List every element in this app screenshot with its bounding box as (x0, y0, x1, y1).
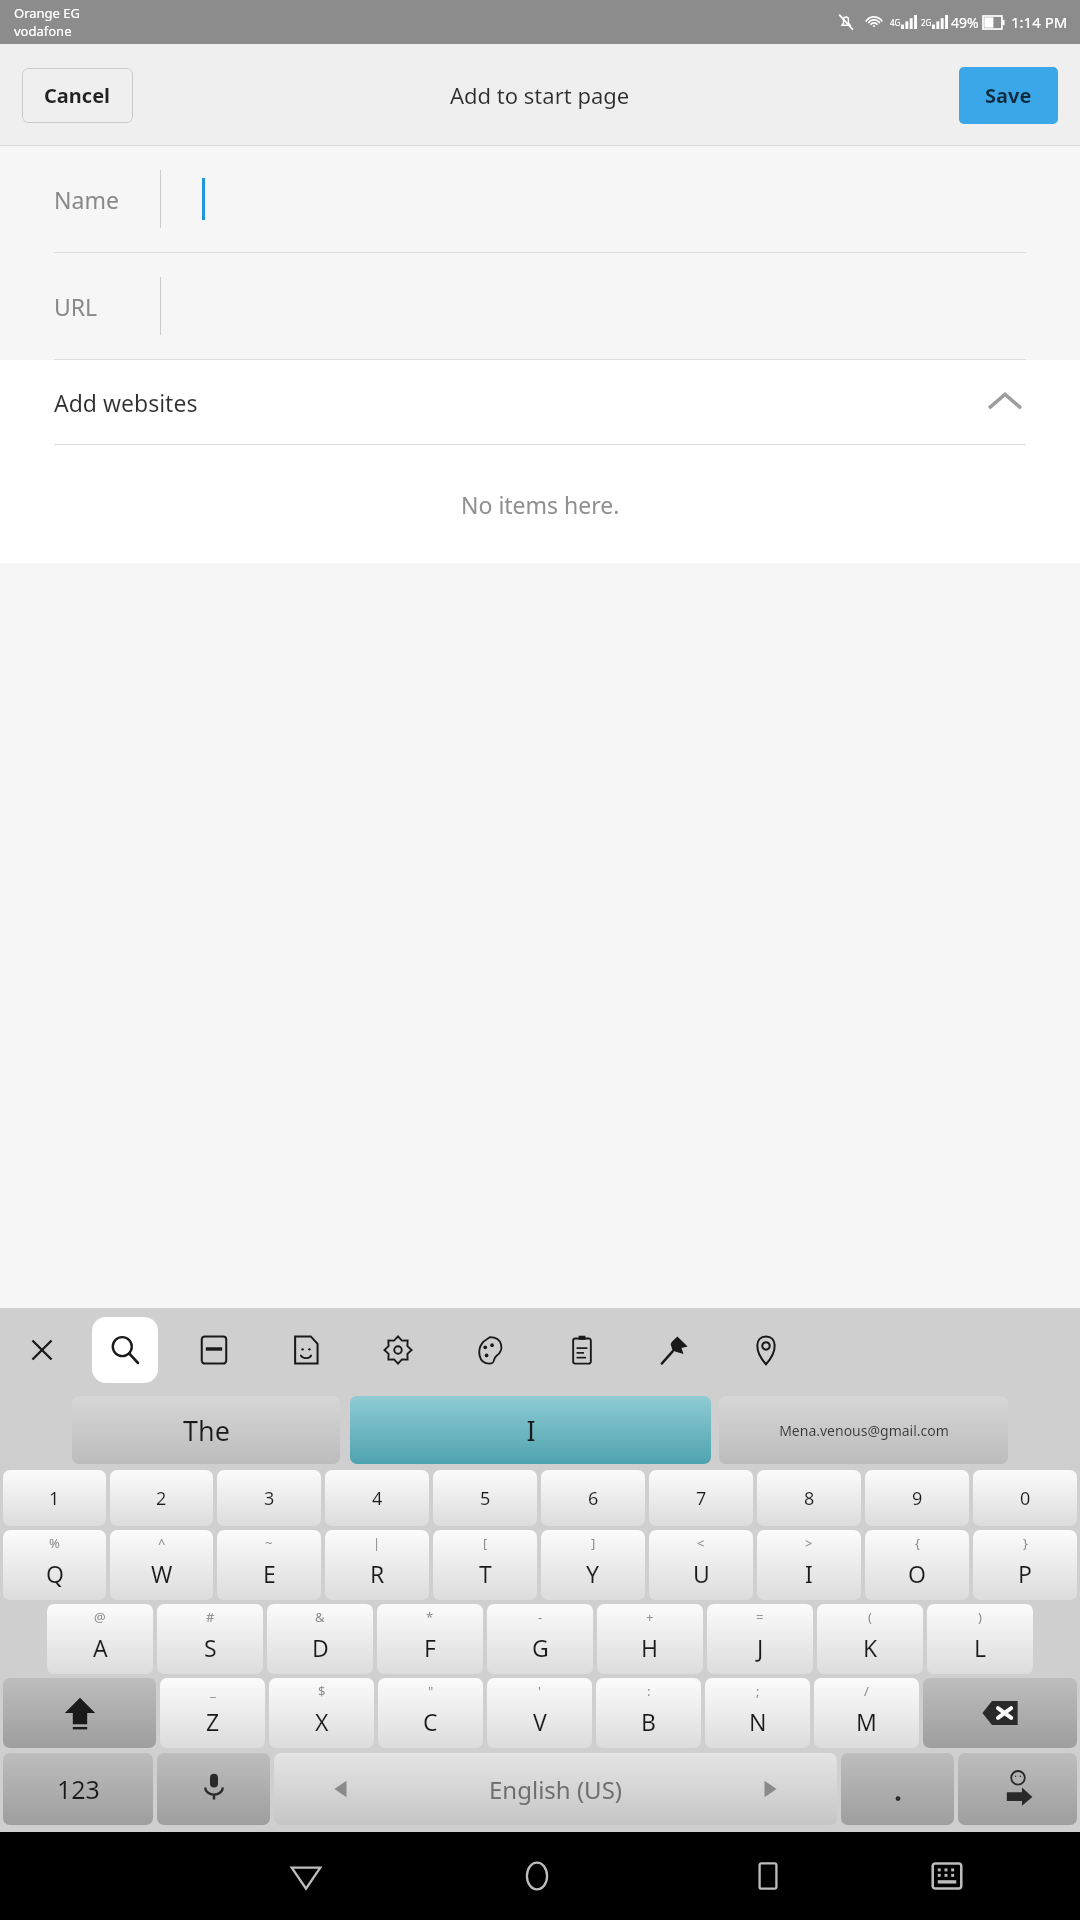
button[interactable]: * (377, 1604, 483, 1674)
button[interactable]: % (3, 1530, 106, 1600)
button[interactable]: @ (47, 1604, 153, 1674)
staticText: I (526, 1412, 536, 1449)
button[interactable]: { (865, 1530, 969, 1600)
button[interactable]: The (72, 1396, 340, 1464)
button[interactable]: GIF (186, 1322, 242, 1378)
staticText: ^ (158, 1534, 166, 1552)
button[interactable]: } (973, 1530, 1077, 1600)
button[interactable]: 8 (757, 1470, 861, 1526)
button[interactable]: Save (959, 67, 1058, 124)
staticText: 7 (696, 1486, 707, 1511)
staticText: 49% (951, 13, 979, 32)
button[interactable]: English (US) (274, 1753, 837, 1825)
button[interactable]: Back (268, 1838, 344, 1914)
button[interactable]: Close (14, 1322, 70, 1378)
button[interactable]: Stickers (278, 1322, 334, 1378)
staticText: Name (54, 184, 119, 215)
button[interactable]: 4 (325, 1470, 429, 1526)
staticText: F (424, 1632, 436, 1663)
button[interactable]: Name (0, 146, 1080, 253)
staticText: K (863, 1632, 878, 1663)
button[interactable]: | (325, 1530, 429, 1600)
button[interactable]: - (487, 1604, 593, 1674)
button[interactable]: ^ (110, 1530, 213, 1600)
button[interactable]: Cancel (22, 68, 133, 123)
button[interactable]: Home (499, 1838, 575, 1914)
button[interactable]: 1 (3, 1470, 106, 1526)
button[interactable]: ' (487, 1678, 592, 1748)
staticText: 1 (49, 1486, 60, 1511)
button[interactable]: I (350, 1396, 711, 1464)
button[interactable]: ( (817, 1604, 923, 1674)
button[interactable]: Backspace (923, 1678, 1077, 1748)
button[interactable]: & (267, 1604, 373, 1674)
button[interactable]: 6 (541, 1470, 645, 1526)
button[interactable]: URL (0, 253, 1080, 360)
staticText: M (856, 1706, 877, 1737)
staticText: @ (94, 1608, 106, 1626)
button[interactable]: / (814, 1678, 919, 1748)
staticText: > (805, 1534, 813, 1552)
button[interactable]: 3 (217, 1470, 321, 1526)
staticText: Q (46, 1558, 64, 1589)
button[interactable]: Mena.venous@gmail.com (719, 1396, 1008, 1464)
button[interactable]: " (378, 1678, 483, 1748)
button[interactable]: Themes (462, 1322, 518, 1378)
button[interactable]: _ (160, 1678, 265, 1748)
button[interactable]: 7 (649, 1470, 753, 1526)
staticText: { (915, 1534, 920, 1552)
button[interactable]: ; (705, 1678, 810, 1748)
button[interactable]: Recents (730, 1838, 806, 1914)
button[interactable]: Shift (3, 1678, 156, 1748)
staticText: 5 (480, 1486, 491, 1511)
staticText: - (538, 1608, 543, 1626)
staticText: U (693, 1558, 710, 1589)
staticText: 0 (1020, 1486, 1031, 1511)
button[interactable]: 123 (3, 1753, 153, 1825)
staticText: | (373, 1534, 381, 1552)
staticText: _ (210, 1682, 216, 1700)
button[interactable]: $ (269, 1678, 374, 1748)
button[interactable]: Settings (370, 1322, 426, 1378)
staticText: Cancel (44, 82, 111, 109)
staticText: 4G (890, 17, 901, 28)
button[interactable]: Pin (646, 1322, 702, 1378)
staticText: L (974, 1632, 987, 1663)
button[interactable]: 0 (973, 1470, 1077, 1526)
button[interactable]: Hide keyboard (909, 1838, 985, 1914)
staticText: Y (586, 1558, 600, 1589)
button[interactable]: ~ (217, 1530, 321, 1600)
staticText: } (1023, 1534, 1028, 1552)
button[interactable]: = (707, 1604, 813, 1674)
button[interactable]: < (649, 1530, 753, 1600)
staticText: ~ (265, 1534, 273, 1552)
staticText: Save (985, 82, 1032, 109)
staticText: * (426, 1608, 434, 1626)
button[interactable]: 5 (433, 1470, 537, 1526)
button[interactable]: : (596, 1678, 701, 1748)
staticText: E (263, 1558, 276, 1589)
button[interactable]: 9 (865, 1470, 969, 1526)
button[interactable]: Enter (958, 1753, 1077, 1825)
button[interactable]: [ (433, 1530, 537, 1600)
staticText: Add websites (54, 387, 198, 418)
button[interactable]: Period (841, 1753, 954, 1825)
button[interactable]: Clipboard (554, 1322, 610, 1378)
staticText: = (756, 1608, 764, 1626)
button[interactable]: 2 (110, 1470, 213, 1526)
staticText: English (US) (489, 1773, 623, 1806)
button[interactable]: Location (738, 1322, 794, 1378)
staticText: N (749, 1706, 767, 1737)
staticText: B (641, 1706, 656, 1737)
button[interactable]: ] (541, 1530, 645, 1600)
staticText: 1:14 PM (1011, 12, 1068, 32)
button[interactable]: Add websites (0, 360, 1080, 444)
staticText: No items here. (461, 489, 620, 520)
button[interactable]: Search (92, 1317, 158, 1383)
button[interactable]: # (157, 1604, 263, 1674)
button[interactable]: + (597, 1604, 703, 1674)
button[interactable]: ) (927, 1604, 1033, 1674)
button[interactable]: > (757, 1530, 861, 1600)
staticText: 2G (921, 17, 932, 28)
button[interactable]: Voice input (157, 1753, 270, 1825)
